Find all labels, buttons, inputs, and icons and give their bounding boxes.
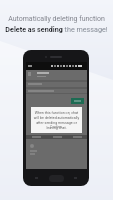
staticText: Automatically deleting function: [0, 15, 113, 23]
button[interactable]: Confirm: [47, 124, 66, 130]
button[interactable]: [26, 70, 87, 79]
button[interactable]: Home: [49, 175, 64, 182]
button[interactable]: [71, 98, 84, 104]
staticText: When this function on, chat will be dele…: [33, 111, 80, 130]
staticText: Delete as sending the message!: [0, 25, 113, 33]
